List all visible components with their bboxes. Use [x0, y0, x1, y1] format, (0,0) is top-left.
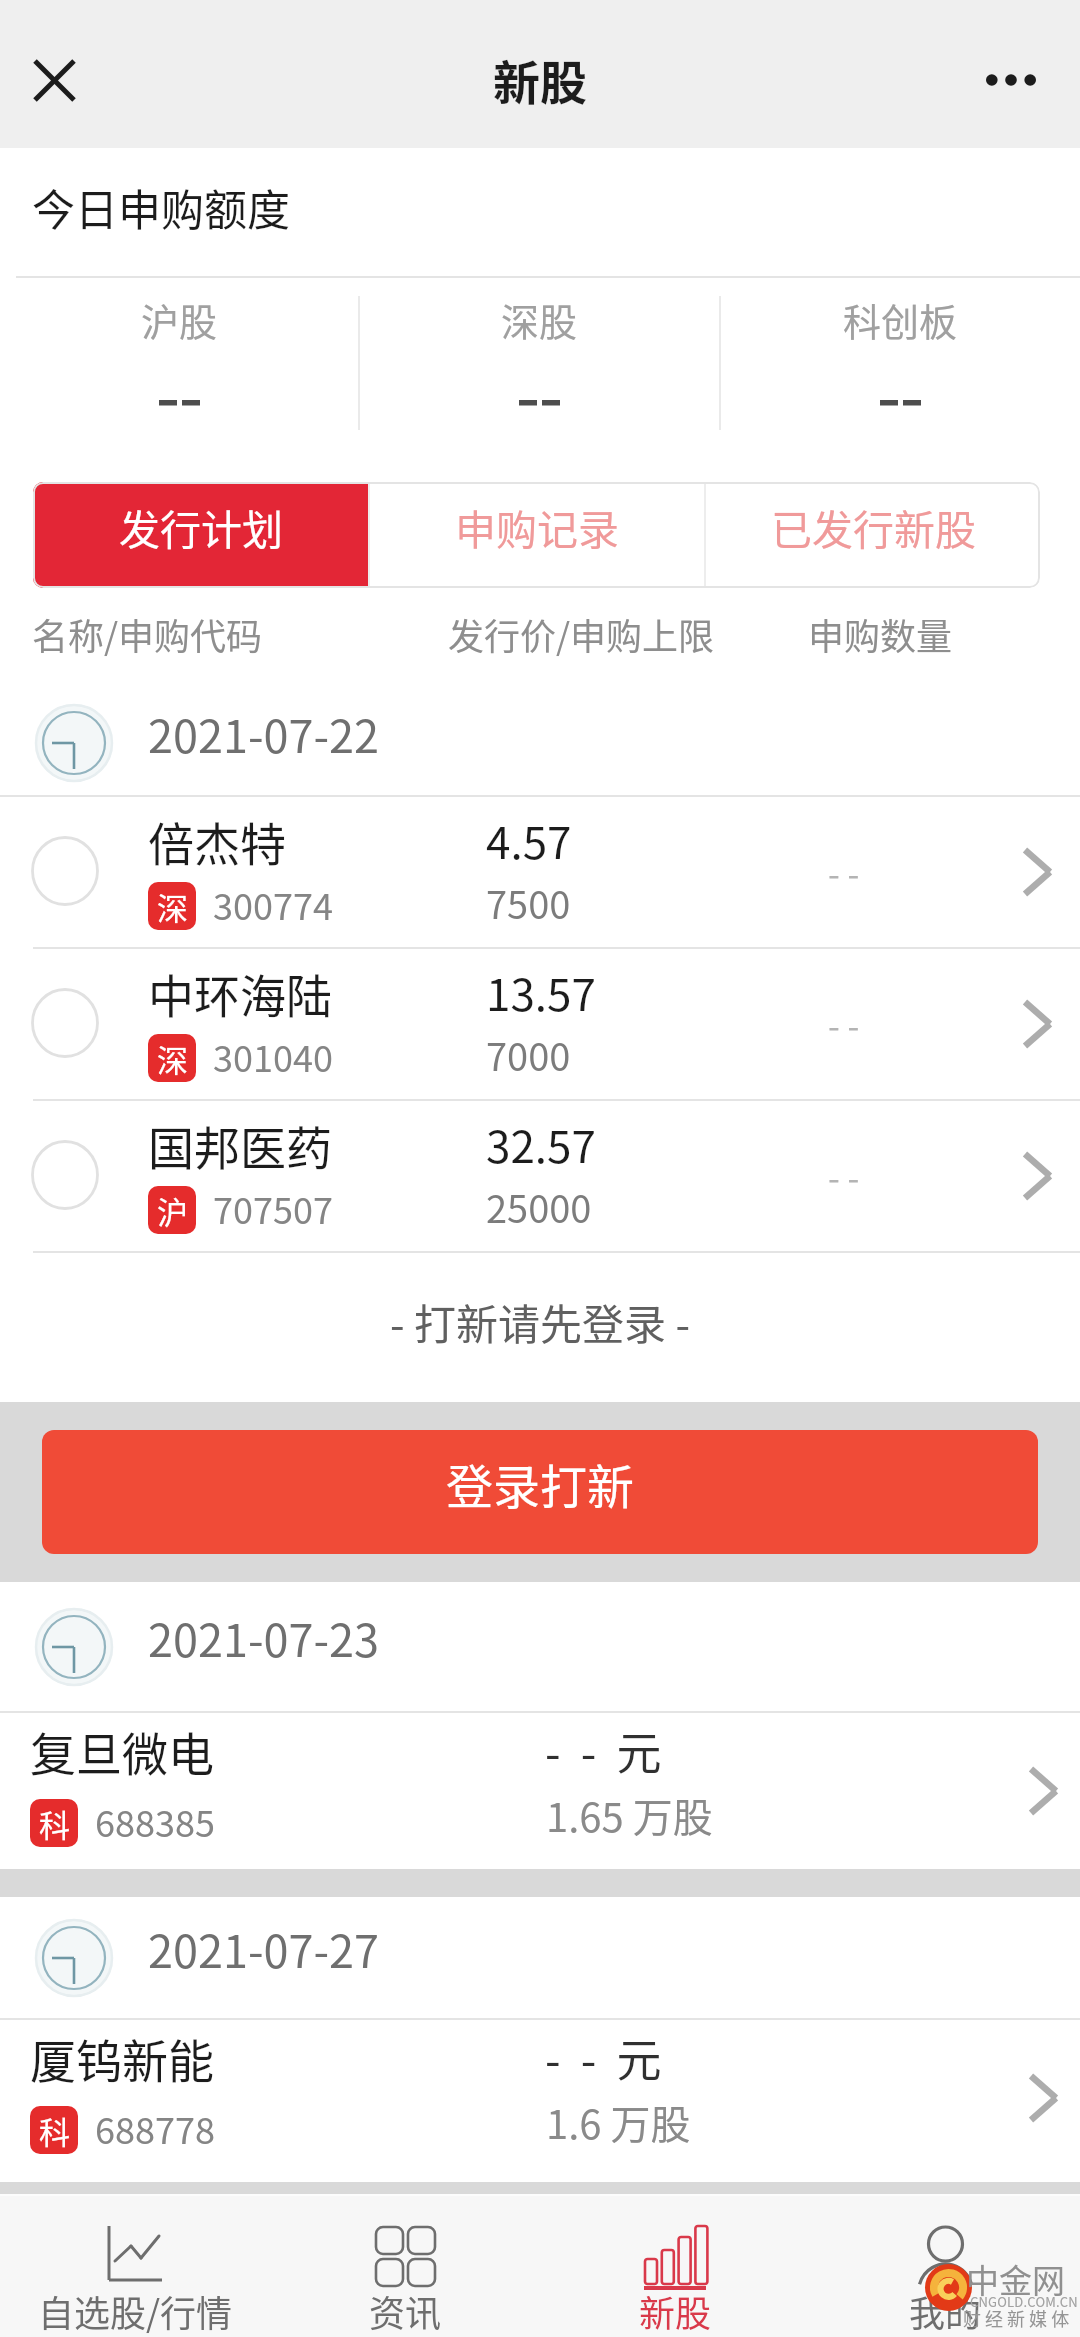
staticText: 发行价/申购上限: [448, 608, 715, 660]
button[interactable]: Close: [0, 0, 108, 148]
staticText: - 打新请先登录 -: [390, 1291, 690, 1352]
staticText: 深: [157, 1036, 188, 1081]
staticText: 名称/申购代码: [32, 608, 263, 660]
staticText: 倍杰特: [148, 808, 286, 875]
staticText: 1.6 万股: [546, 2093, 691, 2151]
staticText: 301040: [213, 1030, 333, 1082]
staticText: 发行计划: [119, 497, 283, 556]
staticText: 13.57: [486, 960, 596, 1024]
staticText: 沪: [157, 1188, 188, 1233]
button[interactable]: More options: [960, 0, 1080, 148]
button[interactable]: 沪股: [0, 278, 358, 462]
button[interactable]: 登录打新: [42, 1430, 1038, 1554]
staticText: 688385: [95, 1795, 215, 1847]
button[interactable]: 申购记录: [370, 482, 704, 588]
staticText: 2021-07-23: [148, 1605, 380, 1670]
button[interactable]: 深股: [360, 278, 719, 462]
staticText: 深股: [501, 292, 578, 347]
staticText: 财 经 新 媒 体: [963, 2305, 1070, 2331]
staticText: - - 元: [545, 2025, 662, 2090]
staticText: 25000: [486, 1179, 592, 1234]
staticText: 2021-07-22: [148, 701, 380, 766]
staticText: 688778: [95, 2102, 215, 2154]
staticText: 资讯: [369, 2285, 442, 2337]
staticText: 科: [39, 1801, 70, 1846]
staticText: 复旦微电: [30, 1718, 214, 1785]
staticText: 32.57: [486, 1112, 596, 1176]
button[interactable]: 科创板: [721, 278, 1080, 462]
staticText: 申购记录: [455, 497, 619, 556]
staticText: - -: [828, 1152, 860, 1201]
button[interactable]: 厦钨新能: [0, 2020, 1080, 2176]
staticText: 300774: [213, 878, 333, 930]
button[interactable]: 已发行新股: [706, 482, 1040, 588]
staticText: 深: [157, 884, 188, 929]
button[interactable]: 发行计划: [33, 482, 368, 588]
staticText: 厦钨新能: [30, 2025, 214, 2092]
staticText: - - 元: [545, 1718, 662, 1783]
staticText: 中环海陆: [148, 960, 332, 1027]
button[interactable]: 自选股/行情: [0, 2196, 270, 2337]
button[interactable]: 倍杰特: [0, 797, 1080, 947]
staticText: 7000: [486, 1027, 571, 1082]
staticText: 中金网: [966, 2255, 1065, 2303]
button[interactable]: 我的: [810, 2196, 1080, 2337]
staticText: 今日申购额度: [32, 176, 290, 238]
staticText: 登录打新: [446, 1449, 634, 1517]
staticText: 新股: [639, 2285, 712, 2337]
button[interactable]: 资讯: [270, 2196, 540, 2337]
staticText: 我的: [909, 2285, 982, 2337]
staticText: 科创板: [843, 292, 958, 347]
staticText: 自选股/行情: [38, 2285, 233, 2337]
button[interactable]: 中环海陆: [0, 949, 1080, 1099]
staticText: CNGOLD.COM.CN: [970, 2292, 1078, 2311]
staticText: 沪股: [141, 292, 218, 347]
staticText: - -: [828, 1000, 860, 1049]
button[interactable]: 国邦医药: [0, 1101, 1080, 1251]
staticText: 国邦医药: [148, 1112, 332, 1179]
staticText: - -: [828, 848, 860, 897]
staticText: 申购数量: [808, 608, 953, 660]
staticText: 7500: [486, 875, 571, 930]
staticText: 4.57: [486, 808, 572, 872]
staticText: 科: [39, 2108, 70, 2153]
staticText: 已发行新股: [771, 497, 976, 556]
button[interactable]: 复旦微电: [0, 1713, 1080, 1869]
button[interactable]: 新股: [540, 2196, 810, 2337]
staticText: 707507: [213, 1182, 333, 1234]
staticText: 2021-07-27: [148, 1916, 380, 1981]
staticText: 新股: [493, 45, 587, 113]
staticText: 1.65 万股: [546, 1786, 713, 1844]
